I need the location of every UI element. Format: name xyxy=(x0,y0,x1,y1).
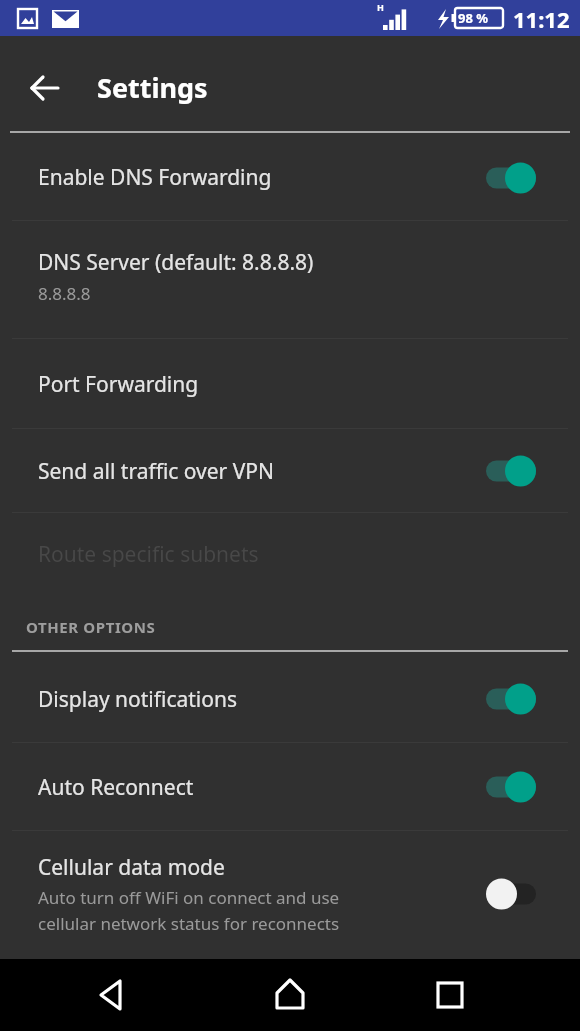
staticText: Send all traffic over VPN xyxy=(38,457,485,486)
button[interactable]: Back xyxy=(90,973,134,1017)
staticText: 11:12 xyxy=(513,4,570,34)
button[interactable]: Send all traffic over VPN xyxy=(0,430,580,512)
staticText: Enable DNS Forwarding xyxy=(38,163,485,192)
staticText: Auto turn off WiFi on connect and use ce… xyxy=(38,886,340,935)
button[interactable]: Toggle off xyxy=(485,876,537,912)
staticText: OTHER OPTIONS xyxy=(26,617,156,637)
staticText: Settings xyxy=(97,69,208,106)
button[interactable]: Toggle on xyxy=(485,160,537,196)
button[interactable]: Toggle on xyxy=(485,453,537,489)
button[interactable]: Toggle on xyxy=(485,769,537,805)
staticText: H xyxy=(377,1,384,13)
button[interactable]: Port Forwarding xyxy=(0,340,580,428)
button[interactable]: Recent apps xyxy=(428,973,472,1017)
button[interactable]: DNS Server (default: 8.8.8.8) xyxy=(0,222,580,338)
staticText: Port Forwarding xyxy=(38,370,580,399)
staticText: Display notifications xyxy=(38,685,485,714)
button[interactable]: Display notifications xyxy=(0,656,580,742)
button[interactable]: Cellular data mode xyxy=(0,832,580,955)
staticText: DNS Server (default: 8.8.8.8) xyxy=(38,248,314,277)
button[interactable]: Toggle on xyxy=(485,681,537,717)
button[interactable]: Enable DNS Forwarding xyxy=(0,135,580,220)
staticText: 8.8.8.8 xyxy=(38,282,91,305)
staticText: Route specific subnets xyxy=(38,540,580,569)
staticText: Auto Reconnect xyxy=(38,773,485,802)
staticText: 98 % xyxy=(458,9,488,27)
staticText: Cellular data mode xyxy=(38,853,225,882)
button[interactable]: Home xyxy=(268,973,312,1017)
button[interactable]: Auto Reconnect xyxy=(0,744,580,830)
button[interactable]: Back xyxy=(20,62,72,114)
